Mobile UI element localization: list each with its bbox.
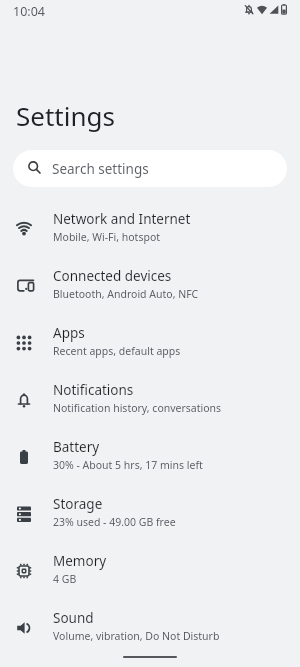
button[interactable]: Search settings [13, 150, 287, 187]
staticText: Search settings [52, 160, 149, 178]
staticText: Memory [53, 552, 107, 570]
staticText: Notification history, conversations [53, 401, 222, 415]
staticText: Apps [53, 324, 85, 342]
button[interactable]: Sound [0, 602, 300, 659]
staticText: Mobile, Wi-Fi, hotspot [53, 230, 161, 244]
button[interactable]: Network and Internet [0, 203, 300, 260]
staticText: 23% used - 49.00 GB free [53, 515, 176, 529]
button[interactable]: Storage [0, 488, 300, 545]
staticText: Sound [53, 609, 94, 627]
staticText: 30% - About 5 hrs, 17 mins left [53, 458, 203, 472]
staticText: Notifications [53, 381, 134, 399]
button[interactable]: Apps [0, 317, 300, 374]
staticText: 10:04 [13, 3, 45, 20]
button[interactable]: Notifications [0, 374, 300, 431]
staticText: Battery [53, 438, 100, 456]
staticText: Storage [53, 495, 103, 513]
staticText: 4 GB [53, 572, 77, 586]
staticText: Network and Internet [53, 210, 191, 228]
staticText: Connected devices [53, 267, 172, 285]
staticText: Recent apps, default apps [53, 344, 181, 358]
staticText: Settings [16, 98, 115, 133]
staticText: Bluetooth, Android Auto, NFC [53, 287, 199, 301]
button[interactable]: Connected devices [0, 260, 300, 317]
button[interactable]: Memory [0, 545, 300, 602]
button[interactable]: Battery [0, 431, 300, 488]
staticText: Volume, vibration, Do Not Disturb [53, 629, 220, 643]
